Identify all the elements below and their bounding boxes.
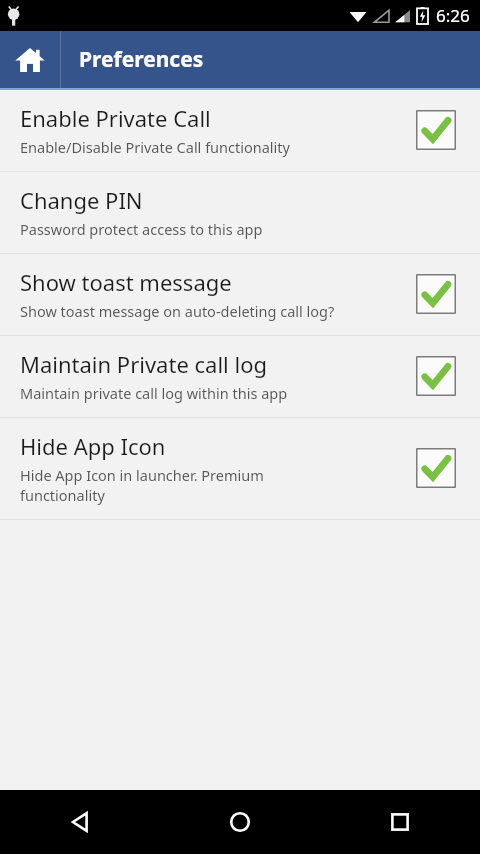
button[interactable]: Hide App Icon	[0, 418, 480, 519]
staticText: Password protect access to this app	[20, 219, 420, 239]
staticText: Maintain private call log within this ap…	[20, 383, 400, 403]
staticText: Hide App Icon in launcher. Premium funct…	[20, 465, 320, 505]
staticText: Enable Private Call	[20, 103, 211, 133]
button[interactable]: Show toast message	[410, 268, 462, 320]
button[interactable]: Recent apps	[320, 790, 480, 854]
button[interactable]: Maintain Private call log	[410, 350, 462, 402]
staticText: Hide App Icon	[20, 431, 166, 461]
staticText: Maintain Private call log	[20, 349, 267, 379]
staticText: Show toast message	[20, 267, 232, 297]
staticText: Show toast message on auto-deleting call…	[20, 301, 400, 321]
button[interactable]: Home	[160, 790, 320, 854]
staticText: Preferences	[79, 45, 204, 74]
button[interactable]: Enable Private Call	[0, 90, 480, 171]
button[interactable]: Enable Private Call	[410, 104, 462, 156]
staticText: 6:26	[436, 4, 470, 27]
button[interactable]: Maintain Private call log	[0, 336, 480, 417]
staticText: Enable/Disable Private Call functionalit…	[20, 137, 400, 157]
button[interactable]: Hide App Icon	[410, 442, 462, 494]
button[interactable]: Home	[0, 31, 60, 88]
button[interactable]: Change PIN	[0, 172, 480, 253]
button[interactable]: Back	[0, 790, 160, 854]
staticText: Change PIN	[20, 185, 143, 215]
button[interactable]: Show toast message	[0, 254, 480, 335]
